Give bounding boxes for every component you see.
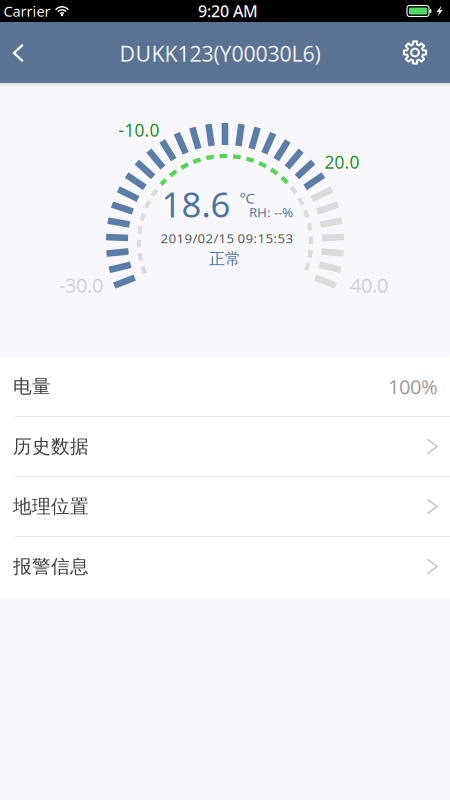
staticText: 2019/02/15 09:15:53 [160, 229, 293, 247]
button[interactable]: 历史数据 [0, 417, 450, 477]
button[interactable]: 地理位置 [0, 477, 450, 537]
staticText: 40.0 [350, 272, 388, 298]
staticText: 18.6 [161, 181, 230, 227]
staticText: -10.0 [118, 118, 159, 141]
staticText: Carrier [3, 1, 50, 21]
staticText: 地理位置 [13, 495, 89, 518]
staticText: 100% [388, 373, 438, 400]
staticText: 正常 [209, 249, 241, 269]
staticText: 9:20 AM [198, 0, 258, 22]
staticText: °C [239, 188, 254, 208]
staticText: -30.0 [59, 272, 103, 298]
staticText: RH: --% [249, 203, 293, 221]
staticText: 历史数据 [13, 435, 89, 458]
staticText: DUKK123(Y00030L6) [119, 39, 320, 68]
button[interactable]: 电量 [0, 357, 450, 417]
button[interactable]: 报警信息 [0, 537, 450, 597]
staticText: 报警信息 [13, 555, 89, 578]
button[interactable]: Settings [389, 27, 440, 78]
staticText: 电量 [13, 375, 51, 398]
staticText: 20.0 [324, 150, 359, 173]
button[interactable]: Back [0, 27, 37, 78]
